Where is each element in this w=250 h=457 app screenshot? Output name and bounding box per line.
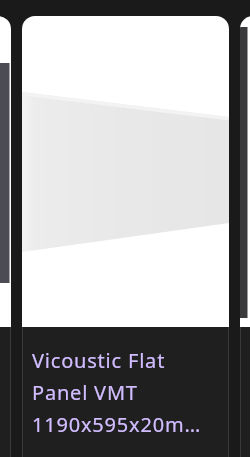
staticText: Vicoustic Flat Panel VMT 1190x595x20mm B… [32, 347, 219, 438]
button[interactable]: Vicoustic Flat Panel VMT 1190x595x20mm B… [22, 16, 229, 457]
button[interactable]: Vicoustic Flat Panel VMT 1190x595x20mm B… [0, 16, 11, 457]
button[interactable]: Vicoustic Flat Panel VMT 1190x595x20mm B… [240, 16, 250, 457]
